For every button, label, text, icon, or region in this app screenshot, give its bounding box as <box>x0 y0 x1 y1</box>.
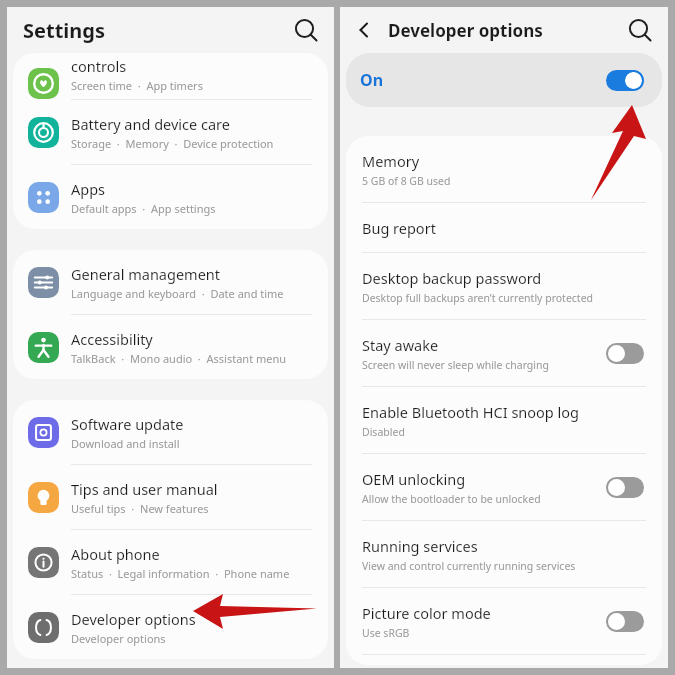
button[interactable]: OEM unlocking <box>346 454 662 520</box>
staticText: Tips and user manual <box>71 479 218 499</box>
button[interactable]: Toggle on <box>606 70 644 91</box>
staticText: View and control currently running servi… <box>362 559 576 573</box>
button[interactable]: General management <box>13 250 328 314</box>
button[interactable]: Memory <box>346 136 662 202</box>
button[interactable]: Back <box>348 13 382 47</box>
staticText: Running services <box>362 536 478 556</box>
staticText: Use sRGB <box>362 626 410 640</box>
button[interactable]: Accessibility <box>13 315 328 379</box>
staticText: Settings <box>23 17 105 44</box>
staticText: Storage · Memory · Device protection <box>71 136 274 151</box>
staticText: OEM unlocking <box>362 469 466 489</box>
staticText: Battery and device care <box>71 114 230 134</box>
staticText: Screen will never sleep while charging <box>362 358 549 372</box>
staticText: Developer options <box>388 19 543 42</box>
staticText: TalkBack · Mono audio · Assistant menu <box>71 351 287 366</box>
staticText: 5 GB of 8 GB used <box>362 174 451 188</box>
staticText: About phone <box>71 544 160 564</box>
button[interactable]: Software update <box>13 400 328 464</box>
button[interactable]: Battery and device care <box>13 100 328 164</box>
button[interactable]: Picture color mode <box>346 588 662 654</box>
button[interactable]: About phone <box>13 530 328 594</box>
staticText: Disabled <box>362 425 405 439</box>
staticText: Software update <box>71 414 184 434</box>
staticText: Useful tips · New features <box>71 501 209 516</box>
staticText: Developer options <box>71 609 196 629</box>
staticText: Allow the bootloader to be unlocked <box>362 492 541 506</box>
button[interactable]: Enable Bluetooth HCI snoop log <box>346 387 662 453</box>
staticText: Download and install <box>71 436 180 451</box>
staticText: Desktop full backups aren’t currently pr… <box>362 291 594 305</box>
staticText: Developer options <box>71 631 166 646</box>
button[interactable]: Search <box>288 12 324 48</box>
button[interactable]: Developer options <box>13 595 328 659</box>
staticText: General management <box>71 264 221 284</box>
button[interactable]: Running services <box>346 521 662 587</box>
button[interactable]: Search <box>622 12 658 48</box>
staticText: Bug report <box>362 218 436 238</box>
staticText: Language and keyboard · Date and time <box>71 286 284 301</box>
staticText: On <box>360 69 384 91</box>
button[interactable]: Tips and user manual <box>13 465 328 529</box>
button[interactable]: Apps <box>13 165 328 229</box>
staticText: Default apps · App settings <box>71 201 216 216</box>
button[interactable]: Toggle off <box>606 611 644 632</box>
button[interactable]: Stay awake <box>346 320 662 386</box>
button[interactable]: Bug report <box>346 203 662 252</box>
staticText: controls <box>71 56 127 76</box>
button[interactable]: Desktop backup password <box>346 253 662 319</box>
staticText: Desktop backup password <box>362 268 542 288</box>
button[interactable]: Toggle off <box>606 477 644 498</box>
staticText: Status · Legal information · Phone name <box>71 566 290 581</box>
staticText: Stay awake <box>362 335 439 355</box>
button[interactable]: On <box>346 53 662 107</box>
staticText: Screen time · App timers <box>71 78 203 93</box>
staticText: Memory <box>362 151 420 171</box>
button[interactable]: controls <box>13 53 328 99</box>
staticText: Accessibility <box>71 329 153 349</box>
staticText: Apps <box>71 179 106 199</box>
staticText: Picture color mode <box>362 603 491 623</box>
staticText: Enable Bluetooth HCI snoop log <box>362 402 579 422</box>
button[interactable]: Toggle off <box>606 343 644 364</box>
